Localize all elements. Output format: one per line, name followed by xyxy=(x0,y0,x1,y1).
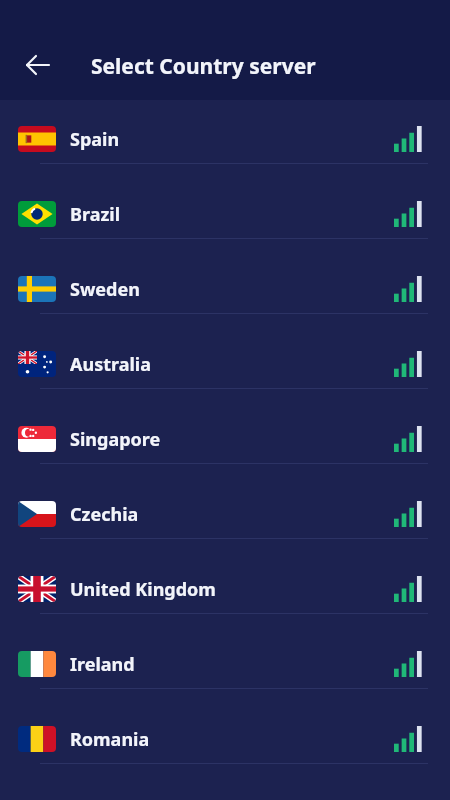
staticText: Select Country server xyxy=(91,52,316,81)
staticText: Ireland xyxy=(70,652,135,677)
button[interactable]: Romania xyxy=(0,708,450,783)
staticText: Singapore xyxy=(70,427,161,452)
staticText: United Kingdom xyxy=(70,577,216,602)
button[interactable]: Czechia xyxy=(0,483,450,558)
staticText: Czechia xyxy=(70,502,139,527)
staticText: Australia xyxy=(70,352,151,377)
button[interactable]: Ireland xyxy=(0,633,450,708)
button[interactable]: Back xyxy=(14,41,62,89)
button[interactable]: United Kingdom xyxy=(0,558,450,633)
button[interactable]: Singapore xyxy=(0,408,450,483)
button[interactable]: Spain xyxy=(0,108,450,183)
staticText: Romania xyxy=(70,727,150,752)
staticText: Brazil xyxy=(70,202,121,227)
button[interactable]: Sweden xyxy=(0,258,450,333)
staticText: Sweden xyxy=(70,277,140,302)
button[interactable]: Australia xyxy=(0,333,450,408)
staticText: Spain xyxy=(70,127,120,152)
button[interactable]: Brazil xyxy=(0,183,450,258)
